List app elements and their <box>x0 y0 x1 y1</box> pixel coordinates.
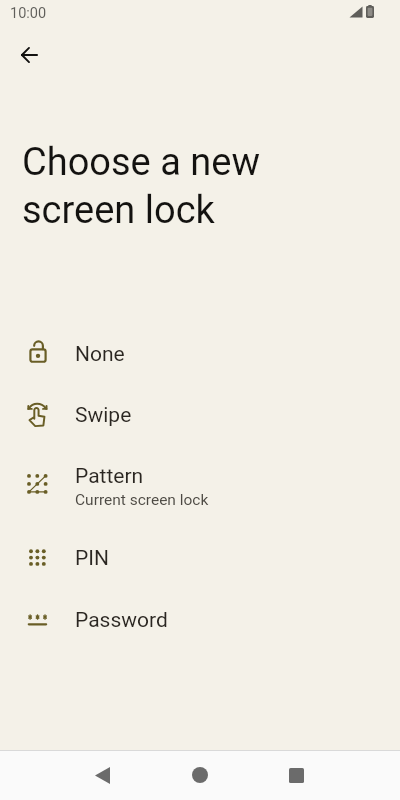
staticText: None <box>75 342 125 367</box>
button[interactable]: Swipe <box>0 385 400 446</box>
staticText: 10:00 <box>10 5 47 22</box>
staticText: Pattern <box>75 464 144 489</box>
staticText: Swipe <box>75 403 132 428</box>
button[interactable]: Back <box>78 751 126 799</box>
button[interactable]: Back <box>9 34 50 75</box>
button[interactable]: Pattern <box>0 446 400 527</box>
button[interactable]: Password <box>0 590 400 651</box>
staticText: Password <box>75 608 168 633</box>
staticText: Choose a new screen lock <box>22 140 260 232</box>
button[interactable]: PIN <box>0 527 400 590</box>
button[interactable]: None <box>0 324 400 385</box>
button[interactable]: Recent apps <box>272 751 320 799</box>
staticText: PIN <box>75 546 109 571</box>
staticText: Current screen lock <box>75 491 209 509</box>
button[interactable]: Home <box>176 751 224 799</box>
